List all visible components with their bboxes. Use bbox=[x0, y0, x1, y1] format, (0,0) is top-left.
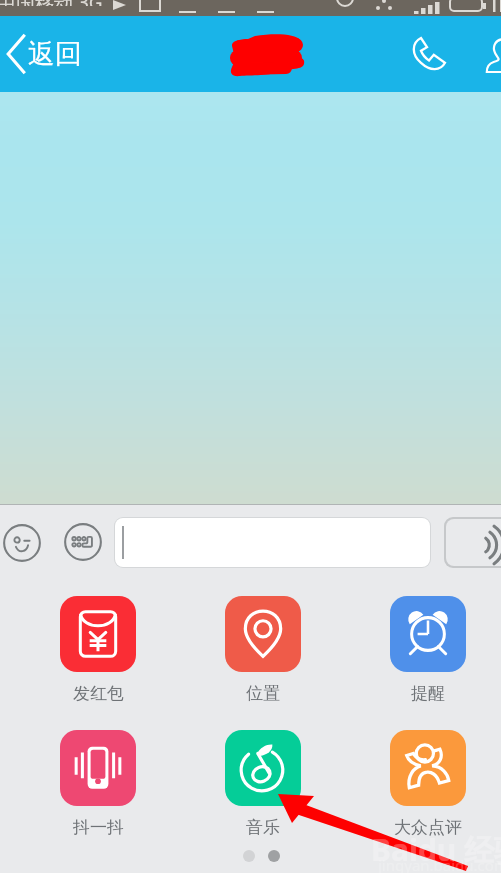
staticText: Baidu 经验 bbox=[371, 829, 501, 870]
button[interactable]: 发红包 bbox=[33, 596, 163, 704]
button[interactable]: Keyboard bbox=[64, 523, 102, 561]
button[interactable]: Contact bbox=[484, 36, 501, 76]
staticText: 位置 bbox=[246, 683, 280, 704]
staticText: 音乐 bbox=[246, 817, 280, 838]
button[interactable]: 音乐 bbox=[198, 730, 328, 838]
button[interactable]: 位置 bbox=[198, 596, 328, 704]
button[interactable]: Voice bbox=[446, 519, 501, 566]
staticText: 中国移动 3G bbox=[0, 0, 103, 6]
staticText: 抖一抖 bbox=[73, 817, 124, 838]
staticText: 提醒 bbox=[411, 683, 445, 704]
staticText: 返回 bbox=[28, 37, 82, 71]
button[interactable] bbox=[115, 518, 430, 567]
button[interactable]: 抖一抖 bbox=[33, 730, 163, 838]
button[interactable]: Emoji bbox=[3, 524, 41, 562]
button[interactable]: 大众点评 bbox=[363, 730, 493, 838]
button[interactable]: 返回 bbox=[0, 16, 86, 92]
staticText: 发红包 bbox=[73, 683, 124, 704]
button[interactable]: 提醒 bbox=[363, 596, 493, 704]
staticText: 大众点评 bbox=[394, 817, 462, 838]
button[interactable]: Call bbox=[403, 28, 455, 80]
staticText: jingyan.baidu.com bbox=[378, 855, 501, 873]
